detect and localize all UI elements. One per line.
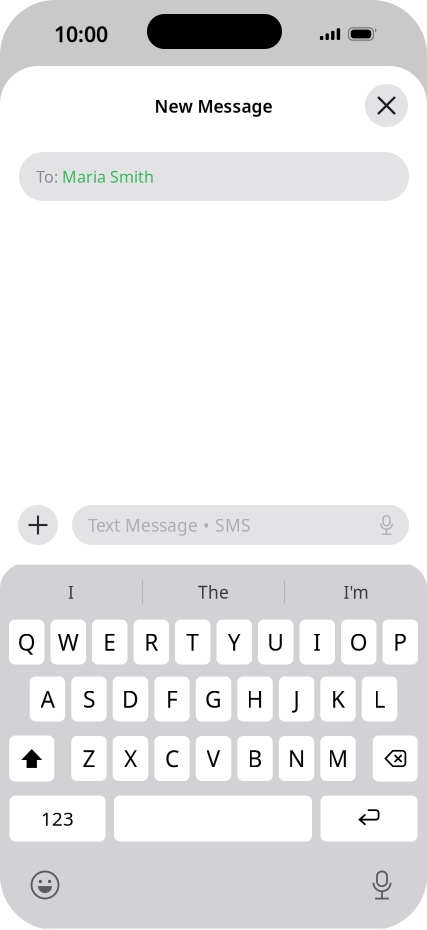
- staticText: Maria Smith: [62, 166, 154, 187]
- staticText: I'm: [343, 580, 368, 603]
- button[interactable]: Text Message • SMS: [72, 505, 409, 545]
- button[interactable]: Y: [216, 619, 252, 664]
- button[interactable]: Shift: [9, 735, 54, 781]
- button[interactable]: L: [362, 676, 397, 721]
- button[interactable]: U: [258, 619, 293, 664]
- staticText: I: [313, 627, 321, 657]
- staticText: F: [166, 684, 178, 714]
- button[interactable]: 123: [9, 795, 105, 841]
- button[interactable]: R: [133, 619, 169, 664]
- staticText: Q: [18, 627, 36, 657]
- button[interactable]: T: [175, 619, 210, 664]
- staticText: L: [373, 684, 385, 714]
- button[interactable]: D: [113, 676, 148, 721]
- staticText: O: [350, 627, 368, 657]
- button[interactable]: S: [71, 676, 107, 721]
- staticText: W: [58, 627, 79, 657]
- button[interactable]: Space: [114, 795, 312, 841]
- button[interactable]: H: [237, 676, 273, 721]
- button[interactable]: Emoji: [23, 865, 67, 905]
- staticText: E: [103, 627, 116, 657]
- button[interactable]: K: [320, 676, 356, 721]
- staticText: G: [205, 684, 222, 714]
- staticText: 123: [41, 806, 74, 831]
- staticText: Y: [228, 627, 241, 657]
- staticText: 10:00: [54, 20, 108, 48]
- staticText: H: [246, 684, 263, 714]
- staticText: J: [293, 684, 299, 714]
- button[interactable]: V: [196, 736, 231, 781]
- button[interactable]: Delete: [373, 735, 418, 781]
- staticText: C: [165, 743, 179, 773]
- staticText: A: [40, 684, 54, 714]
- button[interactable]: I'm: [285, 564, 427, 619]
- staticText: To:: [36, 166, 62, 187]
- staticText: U: [267, 627, 284, 657]
- staticText: K: [331, 684, 345, 714]
- button[interactable]: I: [299, 619, 335, 664]
- button[interactable]: Close: [365, 84, 408, 127]
- button[interactable]: C: [154, 736, 190, 781]
- staticText: R: [144, 627, 158, 657]
- button[interactable]: Return: [320, 795, 417, 841]
- staticText: N: [288, 743, 305, 773]
- button[interactable]: O: [341, 619, 376, 664]
- staticText: B: [247, 743, 262, 773]
- button[interactable]: J: [279, 676, 314, 721]
- button[interactable]: G: [196, 676, 231, 721]
- button[interactable]: W: [50, 619, 86, 664]
- button[interactable]: Q: [9, 619, 44, 664]
- staticText: T: [186, 627, 199, 657]
- button[interactable]: I: [0, 564, 142, 619]
- staticText: P: [393, 627, 407, 657]
- staticText: The: [198, 580, 229, 603]
- button[interactable]: A: [30, 676, 65, 721]
- button[interactable]: B: [237, 736, 273, 781]
- button[interactable]: Z: [71, 736, 107, 781]
- button[interactable]: F: [154, 676, 190, 721]
- staticText: V: [206, 743, 220, 773]
- button[interactable]: P: [382, 619, 418, 664]
- staticText: New Message: [154, 94, 272, 117]
- staticText: Z: [82, 743, 95, 773]
- staticText: S: [83, 684, 95, 714]
- staticText: M: [327, 743, 348, 773]
- button[interactable]: X: [113, 736, 148, 781]
- staticText: Text Message • SMS: [88, 513, 251, 536]
- button[interactable]: Add attachment: [18, 505, 58, 545]
- button[interactable]: M: [320, 736, 356, 781]
- button[interactable]: To:: [19, 152, 409, 201]
- staticText: X: [124, 743, 137, 773]
- button[interactable]: The: [143, 564, 284, 619]
- button[interactable]: N: [279, 736, 314, 781]
- staticText: D: [122, 684, 139, 714]
- button[interactable]: Dictate: [360, 865, 404, 905]
- staticText: I: [68, 580, 74, 603]
- button[interactable]: E: [92, 619, 127, 664]
